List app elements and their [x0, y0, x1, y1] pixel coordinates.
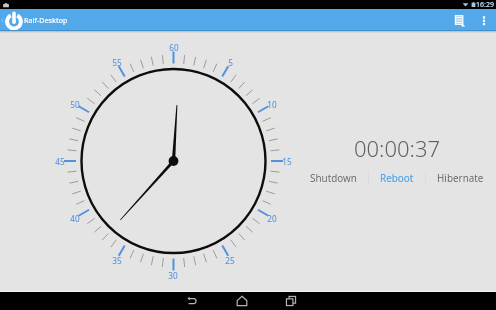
staticText: 45 — [55, 156, 65, 167]
staticText: Hibernate — [437, 171, 484, 184]
button[interactable]: Recents — [273, 292, 309, 310]
staticText: 10 — [267, 99, 277, 110]
staticText: 35 — [112, 255, 122, 266]
button[interactable]: Shutdown — [299, 168, 368, 187]
staticText: 30 — [168, 270, 178, 281]
staticText: 15 — [282, 156, 292, 167]
button[interactable]: Report — [448, 9, 470, 31]
staticText: 60 — [169, 42, 179, 53]
staticText: Shutdown — [310, 171, 357, 184]
button[interactable]: Ralf-Desktop — [0, 9, 72, 31]
button[interactable]: Back — [174, 292, 210, 310]
staticText: 20 — [267, 213, 277, 224]
staticText: Ralf-Desktop — [24, 15, 68, 25]
staticText: 5 — [228, 57, 233, 68]
staticText: 50 — [70, 99, 80, 110]
button[interactable]: Reboot — [369, 168, 425, 187]
button[interactable]: Hibernate — [426, 168, 495, 187]
staticText: Reboot — [380, 171, 414, 184]
staticText: 55 — [112, 57, 122, 68]
staticText: 16:29 — [476, 0, 494, 9]
staticText: 25 — [225, 255, 235, 266]
staticText: 40 — [70, 213, 80, 224]
staticText: 00:00:37 — [354, 133, 441, 163]
button[interactable]: Home — [224, 292, 260, 310]
button[interactable]: More options — [474, 10, 494, 30]
